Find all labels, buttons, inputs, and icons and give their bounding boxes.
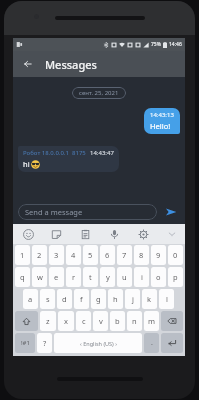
- staticText: !#1: [21, 339, 30, 347]
- button[interactable]: 8: [134, 245, 149, 265]
- button[interactable]: l: [159, 289, 174, 309]
- button[interactable]: u: [117, 267, 132, 287]
- button[interactable]: j: [125, 289, 140, 309]
- staticText: y: [106, 272, 110, 282]
- button[interactable]: 7: [117, 245, 132, 265]
- staticText: i: [141, 272, 143, 282]
- button[interactable]: Робот 18.0.0.0.1 8175: [18, 146, 119, 172]
- button[interactable]: сент. 25, 2021: [72, 87, 126, 99]
- button[interactable]: v: [93, 311, 108, 331]
- staticText: Messages: [45, 57, 97, 72]
- button[interactable]: 9: [151, 245, 166, 265]
- staticText: 8: [139, 250, 144, 260]
- button[interactable]: 6: [100, 245, 115, 265]
- staticText: f: [80, 294, 83, 304]
- button[interactable]: Voice input: [105, 225, 123, 243]
- staticText: o: [156, 272, 161, 282]
- button[interactable]: k: [142, 289, 157, 309]
- staticText: 14:46: [169, 41, 182, 48]
- button[interactable]: ?: [37, 333, 52, 353]
- button[interactable]: o: [151, 267, 166, 287]
- button[interactable]: b: [110, 311, 125, 331]
- staticText: v: [99, 316, 103, 326]
- staticText: g: [96, 294, 101, 304]
- staticText: 0: [173, 250, 178, 260]
- staticText: w: [37, 272, 43, 282]
- staticText: p: [173, 272, 178, 282]
- button[interactable]: Shift: [15, 311, 38, 331]
- staticText: q: [20, 272, 25, 282]
- staticText: 3: [54, 250, 59, 260]
- staticText: x: [64, 316, 68, 326]
- button[interactable]: ‹ English (US) ›: [54, 333, 142, 353]
- staticText: 6: [105, 250, 110, 260]
- staticText: Робот 18.0.0.0.1 8175: [23, 149, 86, 157]
- staticText: 1: [20, 250, 25, 260]
- button[interactable]: y: [100, 267, 115, 287]
- staticText: h: [113, 294, 118, 304]
- button[interactable]: t: [83, 267, 98, 287]
- button[interactable]: e: [49, 267, 64, 287]
- button[interactable]: f: [74, 289, 89, 309]
- button[interactable]: Back: [19, 55, 37, 73]
- button[interactable]: !#1: [15, 333, 35, 353]
- staticText: e: [54, 272, 59, 282]
- staticText: ?: [43, 338, 47, 348]
- staticText: Send a message: [25, 207, 83, 217]
- button[interactable]: 3: [49, 245, 64, 265]
- button[interactable]: z: [40, 311, 56, 331]
- button[interactable]: g: [91, 289, 106, 309]
- staticText: m: [148, 316, 156, 326]
- staticText: 9: [156, 250, 161, 260]
- staticText: ‹ English (US) ›: [80, 340, 117, 347]
- staticText: 7: [122, 250, 127, 260]
- button[interactable]: Stickers: [47, 225, 65, 243]
- button[interactable]: Settings: [134, 225, 152, 243]
- button[interactable]: n: [127, 311, 142, 331]
- staticText: b: [115, 316, 120, 326]
- button[interactable]: Send a message: [18, 204, 157, 220]
- staticText: u: [122, 272, 127, 282]
- button[interactable]: m: [144, 311, 159, 331]
- button[interactable]: Expand: [163, 225, 181, 243]
- button[interactable]: Backspace: [161, 311, 183, 331]
- button[interactable]: .: [144, 333, 159, 353]
- button[interactable]: p: [168, 267, 183, 287]
- button[interactable]: d: [57, 289, 72, 309]
- button[interactable]: a: [23, 289, 38, 309]
- staticText: d: [62, 294, 67, 304]
- staticText: r: [72, 272, 76, 282]
- staticText: c: [82, 316, 86, 326]
- button[interactable]: 2: [32, 245, 47, 265]
- staticText: t: [89, 272, 92, 282]
- button[interactable]: h: [108, 289, 123, 309]
- button[interactable]: Send: [162, 203, 180, 221]
- button[interactable]: i: [134, 267, 149, 287]
- staticText: 4: [71, 250, 76, 260]
- staticText: 14:43:47: [90, 149, 114, 157]
- button[interactable]: Emoji: [19, 225, 37, 243]
- staticText: Hello!: [150, 121, 171, 131]
- staticText: 14:43:13: [150, 111, 174, 119]
- staticText: n: [132, 316, 137, 326]
- button[interactable]: w: [32, 267, 47, 287]
- button[interactable]: x: [58, 311, 74, 331]
- button[interactable]: 5: [83, 245, 98, 265]
- button[interactable]: c: [76, 311, 91, 331]
- staticText: hi: [23, 159, 30, 169]
- button[interactable]: q: [15, 267, 30, 287]
- staticText: l: [166, 294, 168, 304]
- button[interactable]: r: [66, 267, 81, 287]
- staticText: 2: [37, 250, 42, 260]
- staticText: 75%: [151, 41, 161, 48]
- button[interactable]: 14:43:13: [144, 108, 180, 134]
- button[interactable]: 0: [168, 245, 183, 265]
- button[interactable]: Clipboard: [76, 225, 94, 243]
- staticText: s: [46, 294, 50, 304]
- button[interactable]: 4: [66, 245, 81, 265]
- staticText: a: [28, 294, 33, 304]
- button[interactable]: 1: [15, 245, 30, 265]
- button[interactable]: Enter: [161, 333, 183, 353]
- button[interactable]: s: [40, 289, 55, 309]
- staticText: сент. 25, 2021: [79, 89, 119, 97]
